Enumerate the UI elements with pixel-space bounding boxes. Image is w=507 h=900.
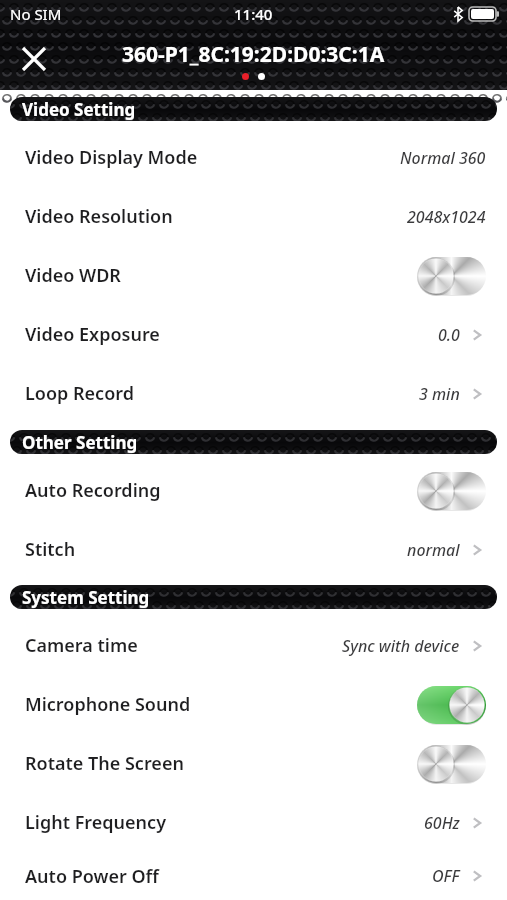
button[interactable]: Video Display Mode bbox=[0, 128, 507, 187]
button[interactable]: Auto Recording bbox=[417, 472, 486, 510]
staticText: Auto Power Off bbox=[25, 864, 159, 889]
staticText: Auto Recording bbox=[25, 478, 161, 503]
staticText: 360-P1_8C:19:2D:D0:3C:1A bbox=[122, 40, 385, 69]
staticText: System Setting bbox=[22, 586, 150, 609]
staticText: Video Resolution bbox=[25, 204, 173, 229]
button[interactable]: Video WDR bbox=[0, 246, 507, 305]
staticText: Other Setting bbox=[22, 431, 138, 454]
staticText: Normal 360 bbox=[400, 147, 486, 169]
staticText: Camera time bbox=[25, 633, 138, 658]
staticText: Microphone Sound bbox=[25, 692, 191, 717]
button[interactable]: Video WDR bbox=[417, 257, 486, 295]
button[interactable]: Camera time bbox=[0, 616, 507, 675]
staticText: Video Display Mode bbox=[25, 145, 198, 170]
button[interactable]: Rotate The Screen bbox=[0, 734, 507, 793]
button[interactable]: Video Exposure bbox=[0, 305, 507, 364]
staticText: Video Exposure bbox=[25, 322, 160, 347]
staticText: OFF bbox=[432, 865, 460, 887]
button[interactable]: Loop Record bbox=[0, 364, 507, 423]
staticText: 3 min bbox=[419, 383, 460, 405]
staticText: normal bbox=[407, 539, 460, 561]
staticText: Loop Record bbox=[25, 381, 134, 406]
staticText: Rotate The Screen bbox=[25, 751, 184, 776]
staticText: 0.0 bbox=[438, 324, 460, 346]
staticText: 11:40 bbox=[234, 4, 273, 24]
button[interactable]: Auto Recording bbox=[0, 461, 507, 520]
staticText: 60Hz bbox=[424, 812, 460, 834]
staticText: Light Frequency bbox=[25, 810, 166, 835]
button[interactable]: Microphone Sound bbox=[0, 675, 507, 734]
button[interactable]: Rotate The Screen bbox=[417, 745, 486, 783]
staticText: Sync with device bbox=[342, 635, 460, 657]
staticText: Video WDR bbox=[25, 263, 121, 288]
button[interactable]: Auto Power Off bbox=[0, 852, 507, 900]
staticText: 2048x1024 bbox=[407, 206, 486, 228]
staticText: Stitch bbox=[25, 537, 76, 562]
button[interactable]: Light Frequency bbox=[0, 793, 507, 852]
staticText: Video Setting bbox=[22, 98, 136, 121]
staticText: No SIM bbox=[10, 4, 62, 24]
button[interactable]: Video Resolution bbox=[0, 187, 507, 246]
button[interactable]: Microphone Sound bbox=[417, 686, 486, 724]
button[interactable]: Stitch bbox=[0, 520, 507, 579]
button[interactable]: Close bbox=[12, 37, 56, 81]
